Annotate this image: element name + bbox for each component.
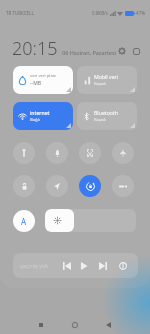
staticText: Kapalı <box>94 81 107 87</box>
staticText: Bluetooth <box>94 109 119 116</box>
staticText: 47% <box>136 10 145 16</box>
button[interactable]: veri veri planı <box>13 66 73 94</box>
staticText: veri veri planı <box>30 73 57 79</box>
button[interactable]: Bluetooth <box>77 102 137 130</box>
button[interactable]: Screen record <box>112 175 134 197</box>
staticText: 06 Haziran, Pazartesi <box>62 49 116 56</box>
button[interactable]: internet <box>13 102 73 130</box>
staticText: geçmiş yok <box>20 262 49 269</box>
staticText: Mobil veri <box>94 73 119 80</box>
button[interactable]: Brightness <box>45 209 136 232</box>
staticText: A <box>21 216 27 227</box>
button[interactable]: Auto brightness <box>13 210 35 232</box>
button[interactable]: Flashlight <box>13 142 35 164</box>
button[interactable]: Settings <box>116 46 128 58</box>
staticText: TR TURKCELL <box>6 10 34 16</box>
staticText: --MB <box>30 80 42 87</box>
button[interactable]: Screenshot <box>79 142 101 164</box>
button[interactable]: Airplane mode <box>112 142 134 164</box>
button[interactable]: Do not disturb <box>46 142 68 164</box>
button[interactable]: Back <box>97 314 119 334</box>
button[interactable]: Mobil veri <box>77 66 137 94</box>
staticText: 20:15 <box>12 36 58 58</box>
button[interactable]: Location <box>46 175 68 197</box>
staticText: Kapalı <box>94 117 107 123</box>
button[interactable]: Edit <box>131 46 141 58</box>
button[interactable]: Next <box>96 259 110 273</box>
staticText: Bağlı <box>30 117 40 123</box>
staticText: 0.0KB/s <box>92 10 108 16</box>
button[interactable]: Cast <box>116 259 130 273</box>
button[interactable]: Auto rotate <box>79 175 101 197</box>
button[interactable]: Home <box>64 314 86 334</box>
button[interactable]: Lock <box>13 175 35 197</box>
button[interactable]: Previous <box>60 259 74 273</box>
staticText: internet <box>30 109 50 116</box>
button[interactable]: Play <box>77 259 91 273</box>
button[interactable]: Recents <box>30 314 52 334</box>
